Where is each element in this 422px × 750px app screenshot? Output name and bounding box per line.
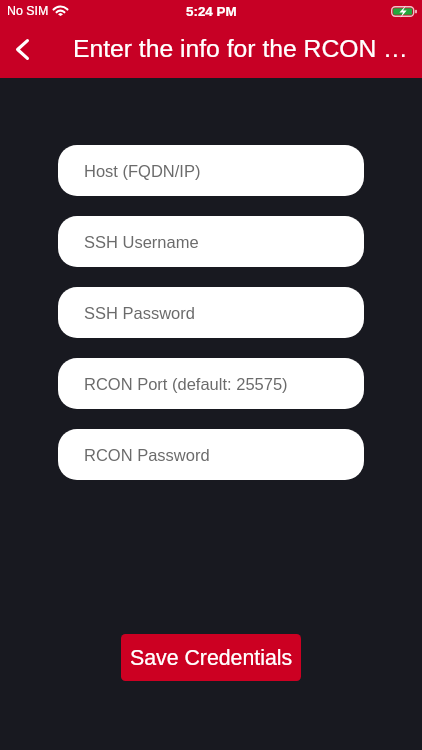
staticText: Host (FQDN/IP): [84, 162, 201, 180]
staticText: Save Credentials: [130, 646, 293, 670]
button[interactable]: Save Credentials: [121, 634, 301, 681]
staticText: No SIM: [7, 4, 49, 18]
staticText: Enter the info for the RCON …: [73, 35, 408, 63]
staticText: RCON Password: [84, 446, 210, 464]
staticText: 5:24 PM: [186, 4, 237, 19]
button[interactable]: RCON Password: [58, 429, 364, 480]
button[interactable]: RCON Port (default: 25575): [58, 358, 364, 409]
staticText: SSH Username: [84, 233, 199, 251]
button[interactable]: SSH Password: [58, 287, 364, 338]
button[interactable]: SSH Username: [58, 216, 364, 267]
button[interactable]: Back: [0, 26, 45, 72]
staticText: SSH Password: [84, 304, 195, 322]
staticText: RCON Port (default: 25575): [84, 375, 288, 393]
button[interactable]: Host (FQDN/IP): [58, 145, 364, 196]
